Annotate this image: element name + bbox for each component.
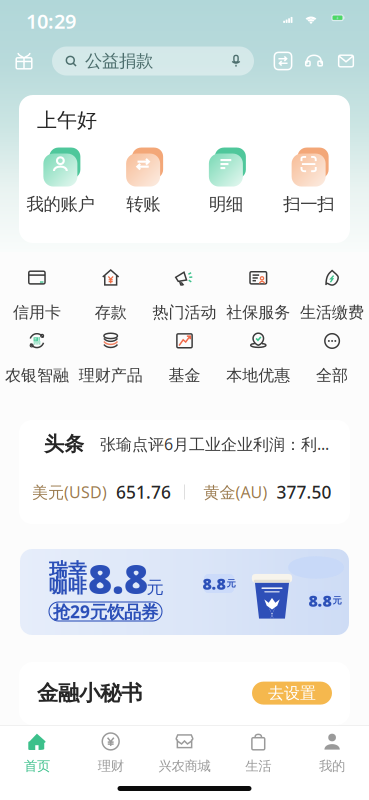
staticText: 本地优惠 xyxy=(226,366,290,385)
staticText: 社保服务 xyxy=(226,303,290,322)
staticText: 上午好 xyxy=(37,108,97,133)
button[interactable]: 转账 xyxy=(102,145,185,215)
staticText: 生活 xyxy=(245,758,271,774)
staticText: 扫一扫 xyxy=(283,194,334,215)
button[interactable]: 首页 xyxy=(0,726,74,774)
staticText: 头条 xyxy=(44,432,84,456)
button[interactable]: 全部 xyxy=(295,334,369,383)
staticText: 首页 xyxy=(24,758,50,774)
staticText: 抢29元饮品券 xyxy=(53,600,158,623)
button[interactable]: 扫一扫 xyxy=(267,145,350,215)
button[interactable]: 我的 xyxy=(295,726,369,774)
staticText: 黄金(AU) xyxy=(203,481,267,503)
button[interactable]: 理财 xyxy=(74,726,148,774)
staticText: 8.8 xyxy=(88,551,148,605)
button[interactable]: 信用卡 xyxy=(0,271,74,320)
button[interactable]: 农银智融 xyxy=(0,334,74,383)
button[interactable]: 热门活动 xyxy=(148,271,221,320)
staticText: 元 xyxy=(146,577,163,598)
staticText: 8.8 xyxy=(202,573,225,594)
staticText: 基金 xyxy=(168,366,200,385)
staticText: 理财产品 xyxy=(79,366,143,385)
staticText: 美元(USD) xyxy=(32,481,107,503)
button[interactable]: Messages xyxy=(330,45,362,77)
staticText: 我的 xyxy=(319,758,345,774)
button[interactable]: 瑞幸 xyxy=(0,524,369,635)
button[interactable]: 兴农商城 xyxy=(148,726,221,774)
button[interactable]: 美元(USD) xyxy=(19,468,184,516)
staticText: 热门活动 xyxy=(152,303,216,322)
button[interactable]: 生活 xyxy=(221,726,295,774)
button[interactable]: Customer service xyxy=(298,45,330,77)
staticText: 咖啡 xyxy=(49,574,87,597)
button[interactable]: 明细 xyxy=(184,145,267,215)
button[interactable]: 社保服务 xyxy=(221,271,295,320)
staticText: 377.50 xyxy=(276,480,331,503)
button[interactable]: 本地优惠 xyxy=(221,334,295,383)
staticText: 农银智融 xyxy=(5,366,69,385)
staticText: 信用卡 xyxy=(13,303,61,322)
button[interactable]: 生活缴费 xyxy=(295,271,369,320)
staticText: 去设置 xyxy=(268,683,316,703)
staticText: 全部 xyxy=(316,366,348,385)
button[interactable]: 去设置 xyxy=(252,682,332,705)
staticText: 瑞幸 xyxy=(49,558,87,581)
staticText: 张瑜点评6月工业企业利润：利润数据关注两… xyxy=(100,433,338,455)
button[interactable]: Gifts xyxy=(8,45,40,77)
staticText: 公益捐款 xyxy=(85,50,153,72)
staticText: 651.76 xyxy=(116,480,171,503)
staticText: 兴农商城 xyxy=(158,758,210,774)
button[interactable]: 存款 xyxy=(74,271,148,320)
staticText: 转账 xyxy=(126,194,160,215)
staticText: 我的账户 xyxy=(26,194,94,215)
button[interactable]: 黄金(AU) xyxy=(185,468,350,516)
staticText: 生活缴费 xyxy=(300,303,364,322)
staticText: 金融小秘书 xyxy=(37,680,142,706)
staticText: 存款 xyxy=(95,303,127,322)
staticText: 理财 xyxy=(98,758,124,774)
staticText: 元 xyxy=(226,578,235,589)
button[interactable]: 我的账户 xyxy=(19,145,102,215)
staticText: 8.8 xyxy=(308,590,331,611)
staticText: 明细 xyxy=(209,194,243,215)
button[interactable]: 头条 xyxy=(19,420,350,468)
button[interactable]: 基金 xyxy=(148,334,221,383)
staticText: 10:29 xyxy=(26,8,76,34)
button[interactable]: 理财产品 xyxy=(74,334,148,383)
button[interactable]: Transfer xyxy=(268,45,298,77)
staticText: 元 xyxy=(332,595,341,606)
button[interactable]: 公益捐款 xyxy=(52,46,254,75)
